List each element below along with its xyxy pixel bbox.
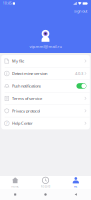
button[interactable]: Terms of service xyxy=(1,92,90,104)
staticText: ? xyxy=(6,121,8,126)
button[interactable]: Home xyxy=(0,176,30,189)
staticText: 10:45 xyxy=(3,2,12,5)
staticText: Home xyxy=(11,185,19,188)
staticText: Privacy protocol xyxy=(12,108,40,113)
button[interactable]: Record xyxy=(30,176,61,189)
staticText: Terms of service xyxy=(12,96,42,101)
staticText: Push notifications xyxy=(12,83,41,89)
staticText: Help Center xyxy=(12,121,33,126)
button[interactable]: My file xyxy=(1,55,90,67)
button[interactable]: Privacy protocol xyxy=(1,105,90,117)
button[interactable]: Back xyxy=(61,189,91,200)
button[interactable]: Detect mine version xyxy=(1,67,90,80)
button[interactable]: Home xyxy=(30,189,61,200)
staticText: Me xyxy=(74,185,78,188)
staticText: My file xyxy=(12,58,24,64)
button[interactable]: sign out xyxy=(72,8,88,14)
staticText: Record xyxy=(40,185,50,188)
button[interactable]: ? xyxy=(1,117,90,129)
button[interactable]: Push notifications xyxy=(1,80,90,92)
staticText: sign out xyxy=(74,8,87,14)
button[interactable]: Recents xyxy=(0,189,30,200)
staticText: vip.mml@mail.ru xyxy=(29,44,61,49)
staticText: Detect mine version xyxy=(12,71,47,76)
button[interactable]: Me xyxy=(61,176,91,189)
staticText: 4.0.3 xyxy=(75,71,83,76)
